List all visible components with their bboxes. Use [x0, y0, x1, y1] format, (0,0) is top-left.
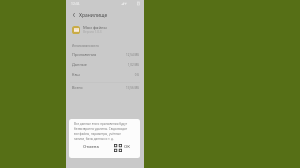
staticText: Мои файлы	[83, 25, 107, 31]
staticText: 13,56 МБ	[125, 86, 139, 90]
button[interactable]: Кэш	[66, 71, 144, 78]
staticText: Использовано места	[72, 44, 99, 48]
staticText: ОК	[124, 144, 130, 150]
staticText: Данные	[72, 62, 87, 67]
button[interactable]: Назад	[70, 11, 78, 19]
button[interactable]: Приложения	[66, 51, 144, 58]
staticText: 12:34	[71, 1, 80, 5]
button[interactable]: Всего	[66, 84, 144, 91]
button[interactable]: Отмена	[81, 143, 101, 151]
staticText: 12,54 МБ	[125, 53, 139, 57]
staticText: Все данные этого приложения будут безвоз…	[74, 122, 128, 141]
staticText: Кэш	[72, 72, 80, 77]
staticText: 1,02 МБ	[127, 63, 139, 67]
staticText: Приложения	[72, 52, 97, 57]
staticText: Хранилище	[79, 12, 108, 19]
staticText: Отмена	[83, 144, 99, 150]
button[interactable]: ОК	[113, 143, 131, 151]
staticText: 0 Б	[134, 73, 139, 77]
button[interactable]: Данные	[66, 61, 144, 68]
button[interactable]: Мои файлы	[66, 23, 144, 36]
staticText: Версия 1.0.3	[83, 30, 102, 34]
staticText: Всего	[72, 85, 83, 90]
